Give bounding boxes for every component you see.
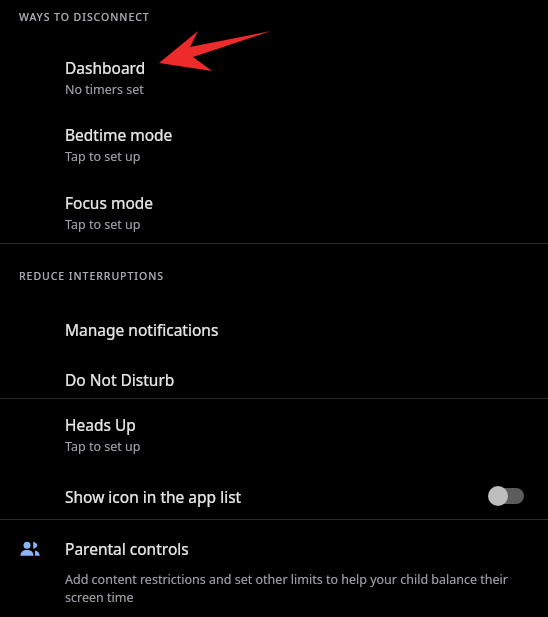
button[interactable]: Dashboard <box>0 46 548 108</box>
staticText: No timers set <box>65 81 144 98</box>
button[interactable]: Parental controls <box>0 530 548 617</box>
other: Parental controls <box>18 538 42 562</box>
staticText: Bedtime mode <box>65 124 173 145</box>
staticText: Parental controls <box>65 538 189 559</box>
staticText: WAYS TO DISCONNECT <box>19 10 150 24</box>
button[interactable]: Do Not Disturb <box>0 354 548 404</box>
button[interactable]: Heads Up <box>0 406 548 462</box>
staticText: Show icon in the app list <box>65 486 242 507</box>
staticText: Tap to set up <box>65 216 141 233</box>
button[interactable]: Show icon in the app list <box>488 484 528 508</box>
button[interactable]: Show icon in the app list <box>0 468 548 524</box>
staticText: REDUCE INTERRUPTIONS <box>19 269 164 283</box>
staticText: Dashboard <box>65 57 146 78</box>
button[interactable]: Focus mode <box>0 180 548 244</box>
button[interactable]: Manage notifications <box>0 304 548 354</box>
staticText: Tap to set up <box>65 438 141 455</box>
staticText: Add content restrictions and set other l… <box>65 571 524 606</box>
staticText: Focus mode <box>65 192 154 213</box>
button[interactable]: Bedtime mode <box>0 112 548 176</box>
staticText: Manage notifications <box>65 319 219 340</box>
staticText: Heads Up <box>65 414 136 435</box>
staticText: Tap to set up <box>65 148 141 165</box>
staticText: Do Not Disturb <box>65 369 175 390</box>
